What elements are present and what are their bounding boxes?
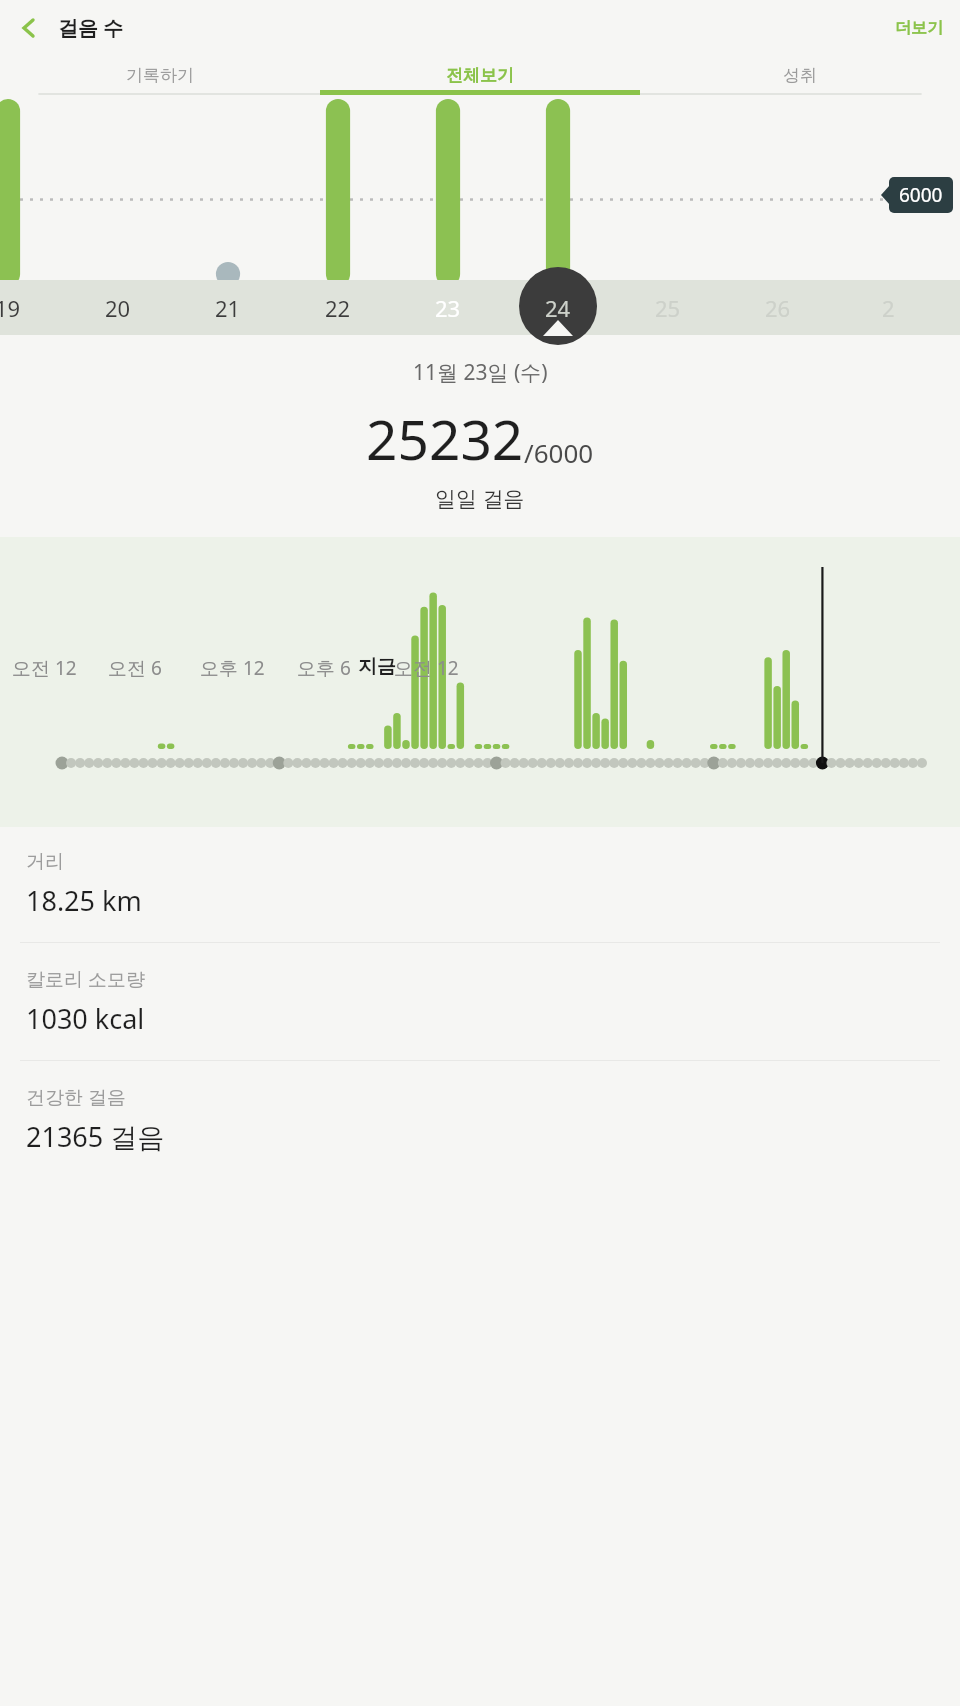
button[interactable]: 칼로리 소모량 xyxy=(0,943,960,1061)
button[interactable]: 거리 xyxy=(0,827,960,943)
staticText: 1030 kcal xyxy=(26,1000,145,1037)
staticText: 건강한 걸음 xyxy=(26,1084,126,1110)
staticText: 20 xyxy=(105,293,131,323)
staticText: 19 xyxy=(0,293,21,323)
staticText: 일일 걸음 xyxy=(435,484,525,513)
button[interactable]: 24 xyxy=(503,280,613,335)
staticText: /6000 xyxy=(524,435,594,470)
staticText: 오후 12 xyxy=(200,655,265,681)
staticText: 21 xyxy=(215,293,241,323)
button[interactable]: 23 xyxy=(393,280,503,335)
staticText: 전체보기 xyxy=(446,65,514,86)
staticText: 11월 23일 (수) xyxy=(413,358,548,387)
staticText: 22 xyxy=(325,293,351,323)
staticText: 더보기 xyxy=(895,18,943,38)
staticText: 지금 xyxy=(358,655,396,679)
button[interactable]: 19 xyxy=(0,280,63,335)
staticText: 오후 6 xyxy=(297,655,351,681)
staticText: 오전 6 xyxy=(108,655,162,681)
button[interactable]: 22 xyxy=(283,280,393,335)
staticText: 25232 xyxy=(366,401,524,476)
button[interactable]: 기록하기 xyxy=(0,55,320,95)
staticText: 기록하기 xyxy=(126,65,194,86)
staticText: 오전 12 xyxy=(12,655,77,681)
button[interactable]: 전체보기 xyxy=(320,55,640,95)
staticText: 25 xyxy=(655,293,681,323)
staticText: 6000 xyxy=(899,182,943,208)
staticText: 18.25 km xyxy=(26,882,142,919)
staticText: 21365 걸음 xyxy=(26,1118,165,1155)
button[interactable]: 더보기 xyxy=(878,8,960,48)
button[interactable]: 성취 xyxy=(640,55,960,95)
staticText: 거리 xyxy=(26,850,64,874)
staticText: 26 xyxy=(765,293,791,323)
staticText: 성취 xyxy=(783,65,817,86)
staticText: 오전 12 xyxy=(394,655,459,681)
button[interactable]: 20 xyxy=(63,280,173,335)
staticText: 2 xyxy=(882,293,895,323)
button[interactable]: Back xyxy=(7,6,51,50)
staticText: 24 xyxy=(545,293,571,323)
button[interactable]: 21 xyxy=(173,280,283,335)
staticText: 칼로리 소모량 xyxy=(26,966,145,992)
button[interactable]: 건강한 걸음 xyxy=(0,1061,960,1178)
staticText: 23 xyxy=(435,293,461,323)
staticText: 걸음 수 xyxy=(58,14,124,41)
